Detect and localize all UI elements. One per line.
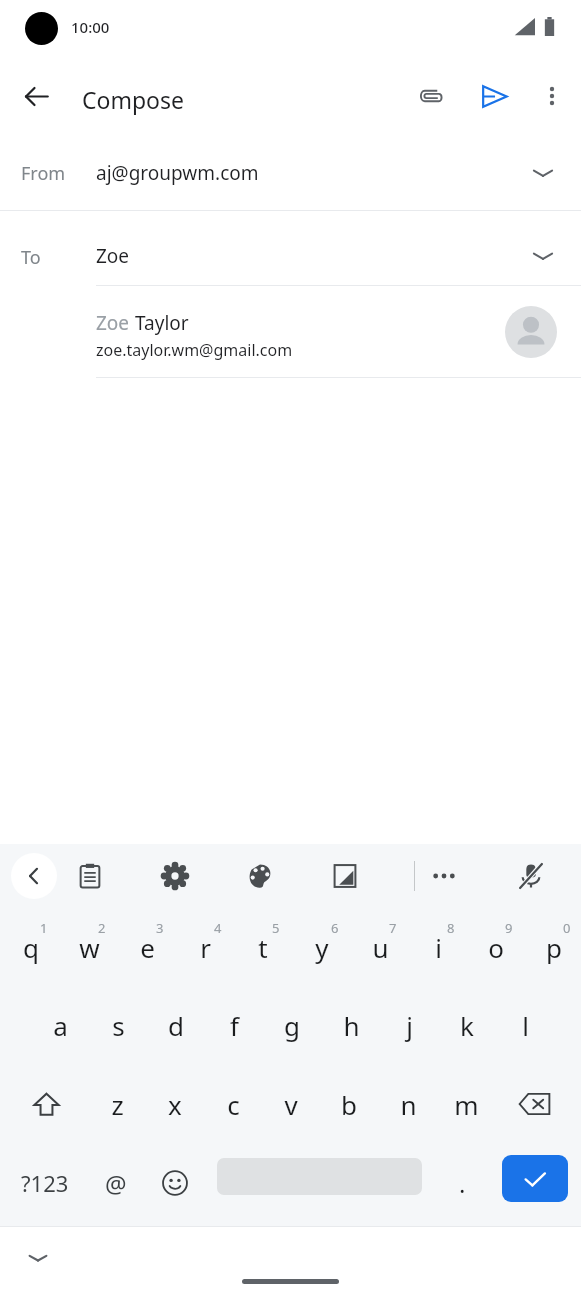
- staticText: s: [112, 1008, 125, 1043]
- staticText: 10:00: [71, 17, 110, 37]
- button[interactable]: c: [206, 1068, 260, 1140]
- staticText: k: [460, 1008, 474, 1043]
- button[interactable]: i: [411, 910, 465, 984]
- staticText: 5: [272, 919, 280, 937]
- button[interactable]: q: [4, 910, 58, 984]
- button[interactable]: p: [527, 910, 581, 984]
- staticText: t: [258, 930, 268, 965]
- staticText: m: [454, 1087, 479, 1122]
- staticText: 8: [447, 919, 455, 937]
- staticText: x: [168, 1087, 182, 1122]
- staticText: u: [372, 930, 389, 965]
- button[interactable]: a: [33, 988, 87, 1062]
- staticText: Zoe: [96, 310, 135, 336]
- staticText: 0: [563, 919, 571, 937]
- staticText: z: [111, 1087, 124, 1122]
- staticText: b: [341, 1087, 357, 1122]
- button[interactable]: b: [322, 1068, 376, 1140]
- staticText: To: [21, 245, 41, 270]
- staticText: f: [230, 1008, 239, 1043]
- button[interactable]: Attach file: [406, 72, 454, 120]
- button[interactable]: w: [62, 910, 116, 984]
- button[interactable]: Voice input off: [508, 853, 554, 899]
- staticText: c: [227, 1087, 240, 1122]
- button[interactable]: g: [265, 988, 319, 1062]
- button[interactable]: u: [353, 910, 407, 984]
- button[interactable]: Zoe: [0, 286, 581, 378]
- button[interactable]: Send: [470, 72, 518, 120]
- button[interactable]: Expand toolbar: [11, 853, 57, 899]
- button[interactable]: y: [295, 910, 349, 984]
- button[interactable]: Back: [12, 72, 60, 120]
- staticText: .: [459, 1167, 466, 1200]
- staticText: @: [105, 1167, 127, 1200]
- staticText: l: [522, 1008, 529, 1043]
- staticText: Zoe: [96, 243, 130, 269]
- button[interactable]: n: [381, 1068, 435, 1140]
- button[interactable]: e: [120, 910, 174, 984]
- button[interactable]: .: [435, 1148, 489, 1218]
- staticText: 4: [214, 919, 222, 937]
- button[interactable]: Theme: [237, 853, 283, 899]
- staticText: zoe.taylor.wm@gmail.com: [96, 339, 293, 361]
- staticText: n: [400, 1087, 417, 1122]
- staticText: v: [284, 1087, 298, 1122]
- button[interactable]: ?123: [10, 1148, 80, 1218]
- button[interactable]: Resize keyboard: [322, 853, 368, 899]
- button[interactable]: More options: [528, 72, 576, 120]
- button[interactable]: Backspace: [505, 1068, 563, 1140]
- staticText: 6: [331, 919, 339, 937]
- button[interactable]: h: [324, 988, 378, 1062]
- staticText: g: [284, 1008, 300, 1043]
- staticText: 7: [389, 919, 397, 937]
- button[interactable]: From: [0, 134, 581, 210]
- button[interactable]: m: [439, 1068, 493, 1140]
- staticText: o: [488, 930, 504, 965]
- button[interactable]: r: [178, 910, 232, 984]
- staticText: 2: [98, 919, 106, 937]
- staticText: j: [406, 1008, 413, 1043]
- button[interactable]: Done: [502, 1155, 568, 1202]
- staticText: 3: [156, 919, 164, 937]
- button[interactable]: l: [498, 988, 552, 1062]
- button[interactable]: d: [149, 988, 203, 1062]
- button[interactable]: At sign: [88, 1148, 144, 1218]
- button[interactable]: Hide keyboard: [14, 1234, 62, 1282]
- staticText: q: [23, 930, 39, 965]
- button[interactable]: More: [421, 853, 467, 899]
- staticText: From: [21, 161, 66, 186]
- staticText: a: [53, 1008, 68, 1043]
- button[interactable]: f: [207, 988, 261, 1062]
- button[interactable]: j: [382, 988, 436, 1062]
- staticText: r: [200, 930, 211, 965]
- button[interactable]: Shift: [17, 1068, 75, 1140]
- button[interactable]: x: [148, 1068, 202, 1140]
- button[interactable]: k: [440, 988, 494, 1062]
- staticText: i: [435, 930, 442, 965]
- button[interactable]: Clipboard: [67, 853, 113, 899]
- staticText: h: [343, 1008, 360, 1043]
- button[interactable]: t: [236, 910, 290, 984]
- staticText: Taylor: [135, 310, 189, 336]
- button[interactable]: s: [91, 988, 145, 1062]
- button[interactable]: z: [90, 1068, 144, 1140]
- button[interactable]: v: [264, 1068, 318, 1140]
- staticText: ?123: [21, 1168, 69, 1198]
- staticText: y: [315, 930, 329, 965]
- button[interactable]: Settings: [152, 853, 198, 899]
- button[interactable]: To: [0, 211, 581, 286]
- staticText: w: [79, 930, 100, 965]
- staticText: 9: [505, 919, 513, 937]
- button[interactable]: Emoji: [147, 1148, 203, 1218]
- staticText: Compose: [82, 84, 185, 115]
- staticText: e: [140, 930, 155, 965]
- staticText: d: [168, 1008, 184, 1043]
- staticText: aj@groupwm.com: [96, 160, 259, 186]
- button[interactable]: o: [469, 910, 523, 984]
- staticText: p: [546, 930, 562, 965]
- staticText: 1: [40, 919, 48, 937]
